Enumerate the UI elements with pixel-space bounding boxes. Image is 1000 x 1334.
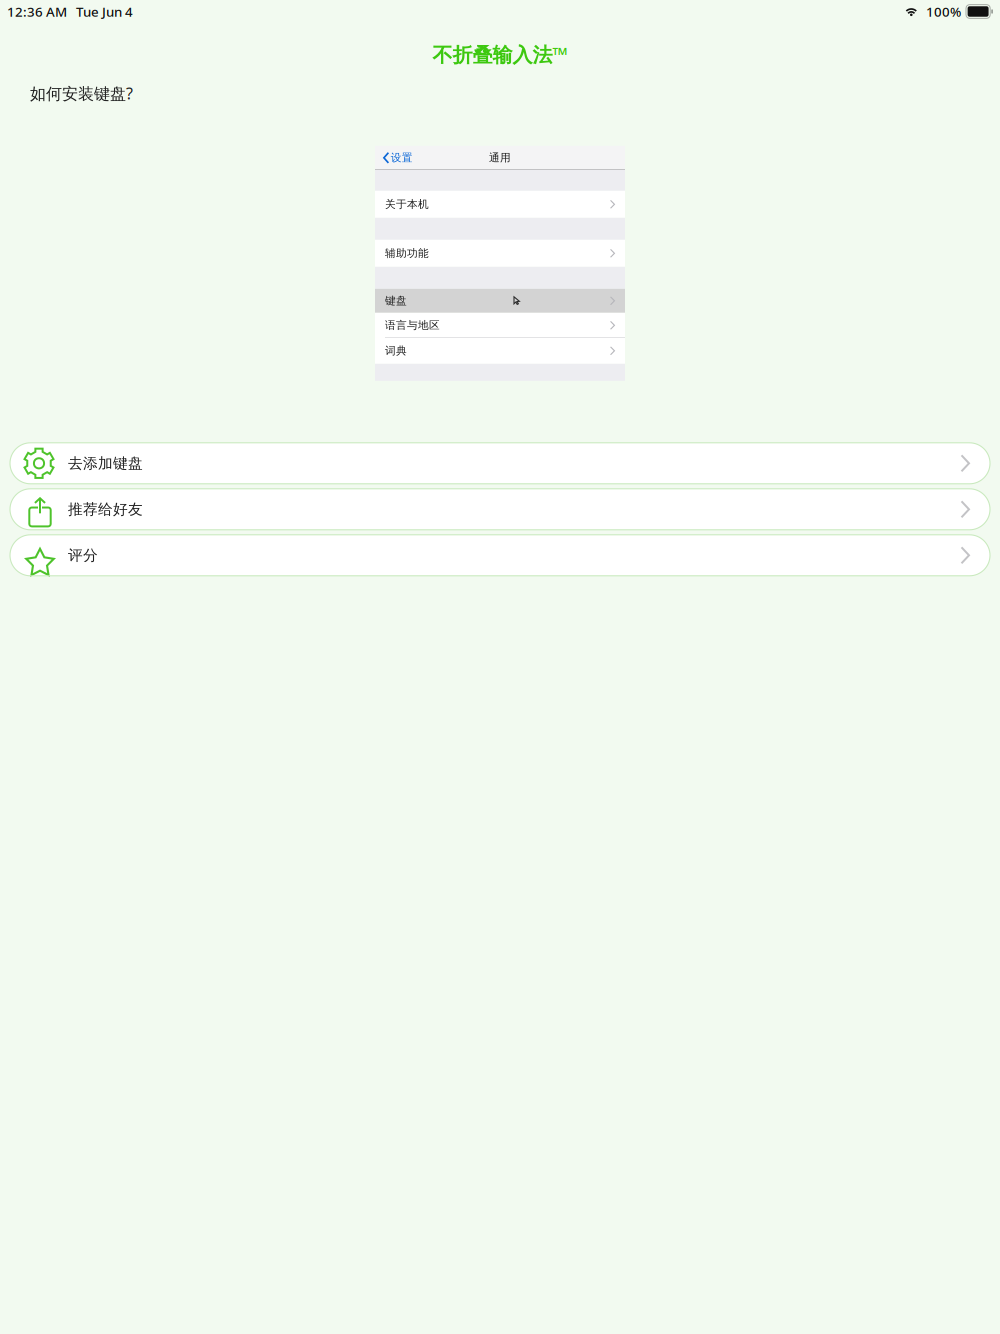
staticText: 语言与地区 <box>385 319 440 332</box>
staticText: 键盘 <box>385 294 407 307</box>
staticText: 100% <box>926 3 961 20</box>
staticText: 关于本机 <box>385 198 429 211</box>
staticText: 评分 <box>68 546 98 564</box>
staticText: 如何安装键盘? <box>30 83 133 104</box>
button[interactable]: 推荐给好友 <box>10 489 990 530</box>
button[interactable]: 评分 <box>10 535 990 576</box>
staticText: 不折叠输入法™ <box>432 41 567 68</box>
staticText: 12:36 AM <box>7 3 67 20</box>
staticText: 推荐给好友 <box>68 500 143 518</box>
staticText: Tue Jun 4 <box>76 3 133 20</box>
staticText: 设置 <box>391 151 413 164</box>
button[interactable]: 去添加键盘 <box>10 443 990 484</box>
staticText: 去添加键盘 <box>68 454 143 472</box>
staticText: 通用 <box>489 151 511 164</box>
staticText: 辅助功能 <box>385 247 429 260</box>
staticText: 词典 <box>385 344 407 357</box>
